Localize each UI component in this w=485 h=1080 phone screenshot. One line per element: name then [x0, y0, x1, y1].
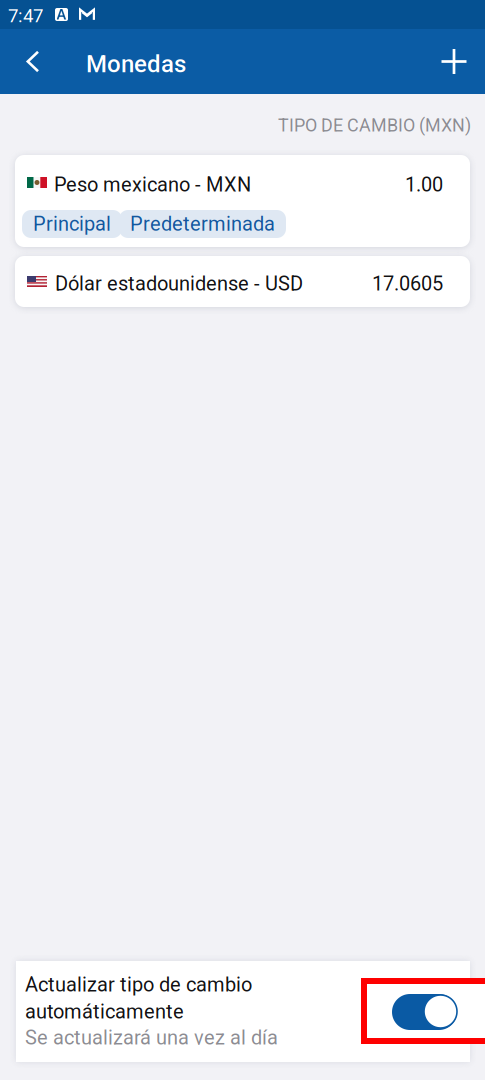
staticText: automáticamente: [25, 1000, 184, 1023]
button[interactable]: Dólar estadounidense - USD: [15, 256, 470, 307]
button[interactable]: Add currency: [423, 29, 485, 94]
staticText: 17.0605: [372, 272, 443, 295]
staticText: A: [56, 6, 66, 23]
staticText: 7:47: [8, 5, 43, 27]
staticText: Predeterminada: [130, 212, 275, 236]
staticText: Dólar estadounidense - USD: [55, 272, 303, 295]
button[interactable]: Peso mexicano - MXN: [15, 155, 470, 247]
staticText: Actualizar tipo de cambio: [25, 973, 252, 996]
button[interactable]: Back: [0, 29, 58, 94]
staticText: Principal: [33, 212, 111, 236]
staticText: Peso mexicano - MXN: [54, 173, 251, 196]
staticText: Se actualizará una vez al día: [25, 1026, 278, 1049]
staticText: Monedas: [86, 50, 186, 78]
button[interactable]: Actualizar tipo de cambio automáticament…: [364, 981, 485, 1041]
staticText: 1.00: [405, 173, 443, 196]
staticText: TIPO DE CAMBIO (MXN): [278, 115, 471, 136]
